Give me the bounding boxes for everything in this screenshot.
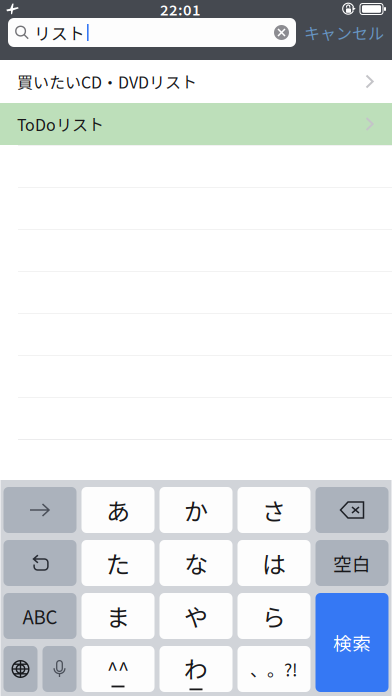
staticText: ^^ [107, 654, 129, 683]
button[interactable]: Dictation [42, 646, 76, 692]
button[interactable]: た [81, 540, 154, 586]
staticText: わ [184, 651, 208, 685]
button[interactable]: Switch keyboard [3, 646, 37, 692]
button[interactable]: Next candidate [3, 487, 76, 533]
staticText: 検索 [333, 629, 371, 656]
staticText: は [262, 546, 286, 580]
staticText: な [184, 546, 208, 580]
staticText: た [106, 546, 130, 580]
button[interactable]: 検索 [315, 593, 388, 692]
button[interactable]: な [159, 540, 232, 586]
staticText: ToDoリスト [17, 112, 104, 136]
staticText: や [184, 599, 208, 633]
staticText: キャンセル [304, 21, 384, 44]
button[interactable]: わ [159, 646, 232, 692]
button[interactable]: さ [237, 487, 310, 533]
button[interactable]: ら [237, 593, 310, 639]
button[interactable]: か [159, 487, 232, 533]
button[interactable]: ABC [3, 593, 76, 639]
button[interactable]: キャンセル [304, 21, 384, 44]
button[interactable]: は [237, 540, 310, 586]
button[interactable]: ^^ [81, 646, 154, 692]
staticText: か [184, 493, 208, 527]
button[interactable]: Delete [315, 487, 388, 533]
staticText: 買いたいCD・DVDリスト [17, 70, 197, 93]
staticText: リスト [34, 20, 85, 44]
button[interactable]: ToDoリスト [0, 103, 392, 145]
button[interactable]: 空白 [315, 540, 388, 586]
button[interactable]: 、。?! [237, 646, 310, 692]
staticText: あ [106, 493, 130, 527]
button[interactable]: 買いたいCD・DVDリスト [0, 60, 392, 103]
button[interactable]: あ [81, 487, 154, 533]
staticText: ま [106, 599, 130, 633]
staticText: ABC [22, 602, 57, 629]
staticText: ら [262, 599, 286, 633]
staticText: 22:01 [160, 0, 201, 20]
staticText: さ [262, 493, 286, 527]
staticText: 空白 [333, 549, 371, 576]
button[interactable]: や [159, 593, 232, 639]
staticText: 、。?! [250, 656, 298, 682]
button[interactable]: Undo [3, 540, 76, 586]
button[interactable]: Clear search text [274, 25, 289, 40]
button[interactable]: ま [81, 593, 154, 639]
